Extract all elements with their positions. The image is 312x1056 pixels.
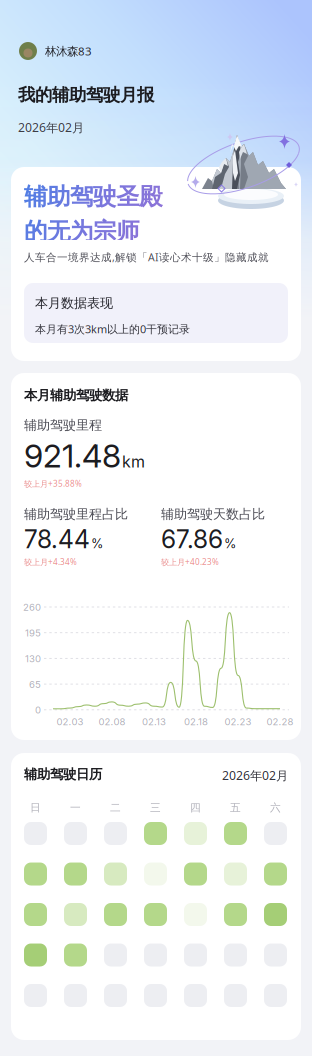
staticText: 六 (270, 801, 281, 814)
staticText: 02.23 (224, 716, 251, 728)
staticText: 辅助驾驶日历 (24, 766, 102, 783)
staticText: 02.13 (142, 716, 166, 728)
staticText: 260 (23, 601, 41, 613)
staticText: 人车合一境界达成,解锁「AI读心术十级」隐藏成就 (24, 250, 269, 264)
staticText: 日 (30, 801, 41, 814)
staticText: 二 (110, 801, 121, 814)
staticText: 0 (35, 704, 41, 716)
staticText: % (91, 536, 103, 551)
staticText: 78.44 (24, 524, 90, 554)
staticText: 2026年02月 (18, 119, 84, 136)
staticText: 本月数据表现 (35, 295, 113, 311)
staticText: 较上月+35.88% (24, 478, 82, 489)
staticText: 辅助驾驶里程 (24, 417, 102, 433)
staticText: 67.86 (161, 524, 223, 554)
staticText: 65 (29, 679, 41, 690)
staticText: 195 (25, 627, 41, 639)
staticText: 本月辅助驾驶数据 (24, 387, 128, 404)
staticText: 较上月+4.34% (24, 556, 77, 567)
staticText: 五 (230, 801, 241, 814)
staticText: 三 (150, 801, 161, 814)
staticText: 一 (70, 801, 81, 814)
button[interactable]: 林沐森83 (19, 38, 104, 64)
staticText: km (122, 452, 145, 471)
staticText: 02.18 (184, 716, 208, 728)
staticText: 我的辅助驾驶月报 (18, 84, 154, 106)
staticText: 02.03 (56, 716, 83, 728)
staticText: % (224, 536, 236, 551)
staticText: 四 (190, 801, 201, 814)
staticText: 130 (25, 653, 41, 664)
staticText: 辅助驾驶天数占比 (161, 506, 265, 522)
staticText: 2026年02月 (222, 767, 288, 784)
staticText: 林沐森83 (45, 43, 92, 59)
staticText: 02.08 (98, 716, 125, 728)
staticText: 02.28 (266, 716, 293, 728)
staticText: 921.48 (24, 436, 121, 475)
staticText: 较上月+40.23% (161, 556, 219, 567)
staticText: 辅助驾驶里程占比 (24, 506, 128, 522)
staticText: 本月有3次3km以上的0干预记录 (35, 321, 190, 336)
